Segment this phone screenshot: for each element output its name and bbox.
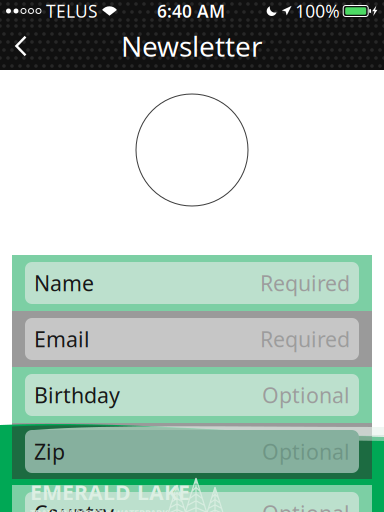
button[interactable]: Back [0,22,42,70]
staticText: Zip [34,437,65,465]
staticText: Optional [262,381,350,409]
staticText: Required [260,269,350,297]
staticText: TRAILER RESORT & WATERPARK [30,506,168,512]
button[interactable]: Zip [12,423,372,479]
staticText: Country [34,499,114,512]
button[interactable]: Email [12,311,372,367]
staticText: Email [34,325,90,353]
button[interactable]: Birthday [12,367,372,423]
staticText: 6:40 AM [157,0,225,22]
staticText: Required [260,325,350,353]
staticText: Birthday [34,381,120,409]
button[interactable]: Name [12,255,372,311]
staticText: Zip [34,437,65,466]
staticText: Optional [262,437,350,466]
staticText: 100% [295,0,339,22]
staticText: Optional [262,499,350,512]
staticText: EMERALD LAKE [30,478,190,506]
staticText: TELUS [46,0,98,22]
staticText: Name [34,269,94,297]
staticText: Optional [262,437,350,465]
staticText: Newsletter [121,27,263,65]
button[interactable]: Country [12,485,372,512]
